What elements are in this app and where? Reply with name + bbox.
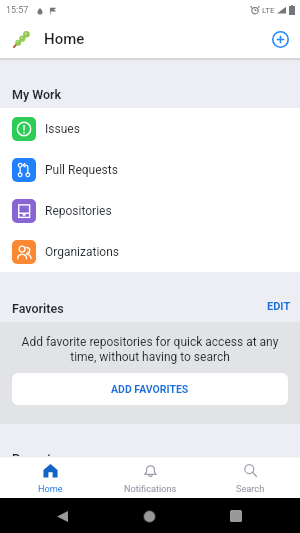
button[interactable]: Back — [50, 504, 74, 528]
staticText: Recent — [12, 451, 52, 456]
staticText: Favorites — [12, 301, 64, 316]
staticText: Notifications — [124, 483, 177, 494]
staticText: LTE — [262, 6, 275, 15]
button[interactable]: Notifications — [100, 456, 200, 498]
button[interactable]: Home — [0, 456, 100, 498]
staticText: Repositories — [45, 204, 112, 218]
button[interactable]: EDIT — [253, 292, 300, 322]
staticText: Home — [38, 483, 63, 494]
staticText: 15:57 — [6, 5, 29, 16]
staticText: Pull Requests — [45, 163, 118, 177]
button[interactable]: Home — [137, 504, 161, 528]
staticText: Issues — [45, 122, 80, 136]
staticText: EDIT — [267, 300, 291, 313]
button[interactable]: Search — [200, 456, 300, 498]
staticText: My Work — [12, 87, 62, 102]
button[interactable]: Issues — [0, 108, 300, 149]
staticText: Organizations — [45, 245, 120, 259]
staticText: Search — [236, 483, 265, 494]
button[interactable]: Repositories — [0, 190, 300, 231]
button[interactable]: ADD FAVORITES — [12, 373, 288, 405]
staticText: ADD FAVORITES — [111, 383, 189, 395]
button[interactable]: Recent apps — [224, 504, 248, 528]
button[interactable]: Pull Requests — [0, 149, 300, 190]
button[interactable]: Create new — [267, 26, 293, 52]
staticText: Home — [44, 30, 85, 48]
button[interactable]: Organizations — [0, 231, 300, 272]
staticText: Add favorite repositories for quick acce… — [20, 335, 280, 364]
